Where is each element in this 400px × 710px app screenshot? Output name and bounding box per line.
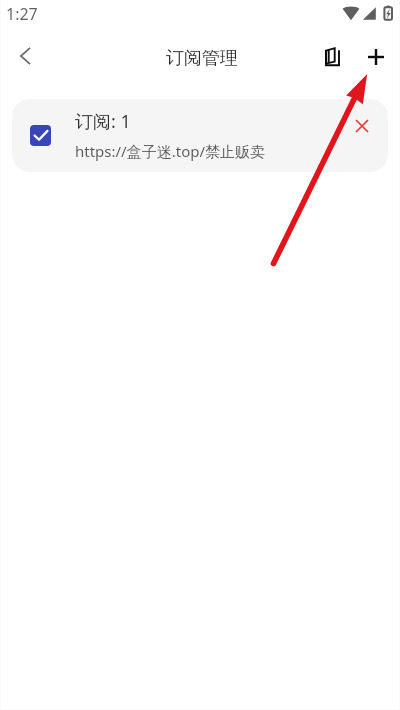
staticText: 1:27 [6,3,38,25]
button[interactable]: Delete subscription [342,106,382,146]
button[interactable]: Back [0,34,48,82]
button[interactable]: Library [310,36,354,80]
button[interactable]: Add subscription [354,35,400,81]
staticText: 订阅管理 [166,47,238,70]
button[interactable]: Subscription enabled [12,99,388,172]
button[interactable]: Subscription enabled [30,125,51,146]
staticText: https://盒子迷.top/禁止贩卖 [75,141,266,161]
staticText: 订阅: 1 [75,109,131,134]
